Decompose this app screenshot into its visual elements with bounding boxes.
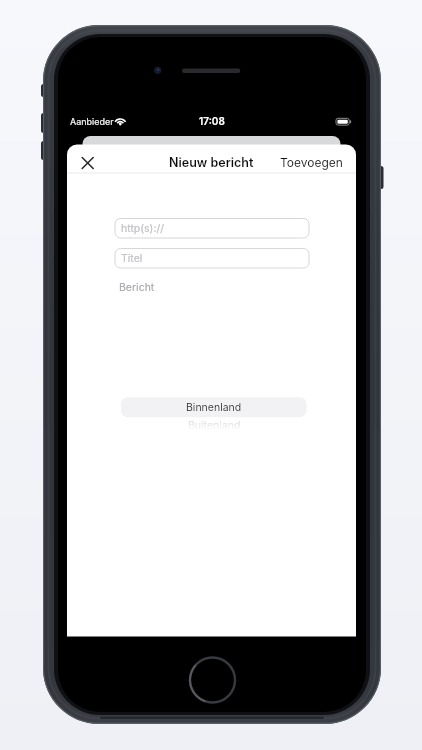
- staticText: Binnenland: [186, 401, 242, 414]
- staticText: http(s)://: [121, 222, 165, 235]
- staticText: Toevoegen: [280, 155, 343, 170]
- staticText: Nieuw bericht: [169, 155, 254, 170]
- staticText: Bericht: [119, 281, 155, 294]
- staticText: Buitenland: [188, 419, 241, 432]
- staticText: Titel: [121, 252, 143, 265]
- staticText: 17:08: [199, 115, 225, 127]
- staticText: Aanbieder: [70, 116, 114, 127]
